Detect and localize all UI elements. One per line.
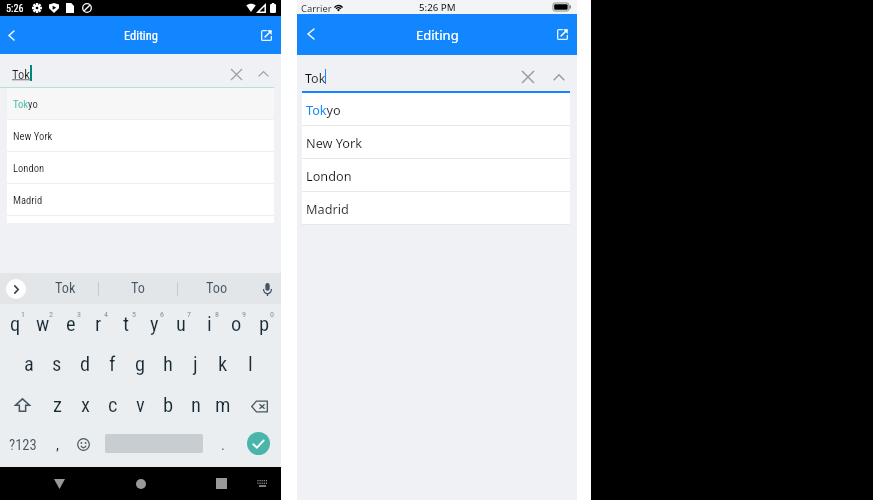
button[interactable]: x bbox=[71, 388, 99, 424]
staticText: London bbox=[13, 162, 45, 174]
staticText: d bbox=[80, 352, 91, 376]
staticText: u bbox=[176, 312, 186, 336]
button[interactable]: g bbox=[126, 347, 154, 383]
staticText: New York bbox=[306, 134, 363, 151]
button[interactable]: London bbox=[302, 159, 570, 192]
staticText: t bbox=[123, 312, 130, 336]
button[interactable]: Madrid bbox=[7, 184, 274, 216]
button[interactable]: Back bbox=[0, 16, 30, 54]
button[interactable]: Clear text bbox=[517, 66, 539, 88]
staticText: London bbox=[306, 167, 352, 184]
staticText: 9 bbox=[242, 310, 246, 319]
button[interactable]: Shift bbox=[8, 391, 36, 419]
button[interactable]: m bbox=[209, 388, 237, 424]
button[interactable]: Too bbox=[178, 273, 256, 304]
button[interactable]: p bbox=[250, 307, 278, 343]
staticText: 6 bbox=[160, 310, 164, 319]
staticText: Tokyo bbox=[13, 98, 38, 110]
staticText: z bbox=[53, 393, 62, 417]
staticText: b bbox=[163, 393, 174, 417]
button[interactable]: Home bbox=[130, 473, 152, 495]
button[interactable]: Voice input bbox=[257, 279, 277, 299]
button[interactable]: r bbox=[84, 307, 112, 343]
button[interactable]: . bbox=[210, 430, 236, 459]
button[interactable]: s bbox=[43, 347, 71, 383]
button[interactable]: New York bbox=[302, 126, 570, 159]
button[interactable]: o bbox=[222, 307, 250, 343]
staticText: . bbox=[221, 436, 225, 454]
staticText: m bbox=[215, 393, 231, 417]
staticText: h bbox=[163, 352, 173, 376]
staticText: 4 bbox=[104, 310, 108, 319]
staticText: Tok bbox=[55, 280, 76, 297]
button[interactable]: ?123 bbox=[1, 430, 44, 459]
button[interactable]: Backspace bbox=[245, 392, 273, 420]
button[interactable]: New York bbox=[7, 120, 274, 152]
staticText: f bbox=[109, 352, 116, 376]
button[interactable]: Recent apps bbox=[211, 473, 232, 494]
staticText: 5:26 bbox=[6, 3, 24, 15]
button[interactable]: More suggestions bbox=[6, 279, 26, 299]
button[interactable]: c bbox=[99, 388, 127, 424]
button[interactable]: i bbox=[195, 307, 223, 343]
button[interactable]: k bbox=[209, 347, 237, 383]
staticText: q bbox=[10, 312, 21, 336]
button[interactable]: Emoji bbox=[70, 430, 96, 459]
button[interactable]: y bbox=[140, 307, 168, 343]
staticText: i bbox=[207, 312, 212, 336]
staticText: Madrid bbox=[306, 200, 349, 217]
staticText: e bbox=[66, 312, 76, 336]
staticText: v bbox=[136, 393, 145, 417]
button[interactable]: , bbox=[44, 430, 70, 459]
button[interactable]: Tokyo bbox=[7, 88, 274, 120]
button[interactable]: Open in new window bbox=[252, 16, 281, 54]
button[interactable]: z bbox=[43, 388, 71, 424]
button[interactable]: b bbox=[154, 388, 182, 424]
button[interactable]: a bbox=[15, 347, 43, 383]
button[interactable]: d bbox=[71, 347, 99, 383]
button[interactable]: Collapse bbox=[548, 66, 570, 88]
button[interactable]: q bbox=[1, 307, 29, 343]
staticText: y bbox=[150, 312, 159, 336]
button[interactable]: Back bbox=[48, 473, 70, 495]
button[interactable]: t bbox=[112, 307, 140, 343]
staticText: s bbox=[52, 352, 62, 376]
staticText: l bbox=[248, 352, 253, 376]
staticText: Too bbox=[206, 280, 228, 297]
staticText: a bbox=[24, 352, 34, 376]
button[interactable]: h bbox=[154, 347, 182, 383]
staticText: Tok bbox=[12, 67, 30, 82]
button[interactable]: To bbox=[99, 273, 177, 304]
staticText: n bbox=[191, 393, 201, 417]
button[interactable]: Back bbox=[297, 14, 327, 54]
button[interactable]: Open in new window bbox=[547, 14, 578, 55]
staticText: Tokyo bbox=[306, 101, 341, 118]
staticText: g bbox=[135, 352, 146, 376]
button[interactable]: Madrid bbox=[302, 192, 570, 225]
staticText: 2 bbox=[49, 310, 53, 319]
staticText: 1 bbox=[21, 310, 25, 319]
button[interactable]: Clear text bbox=[225, 63, 247, 85]
staticText: r bbox=[95, 312, 102, 336]
button[interactable]: London bbox=[7, 152, 274, 184]
button[interactable]: Tok bbox=[32, 273, 98, 304]
staticText: Editing bbox=[416, 26, 459, 44]
staticText: Tok bbox=[305, 70, 326, 87]
staticText: x bbox=[81, 393, 90, 417]
button[interactable]: u bbox=[167, 307, 195, 343]
button[interactable]: Switch keyboard bbox=[252, 473, 273, 494]
staticText: 7 bbox=[187, 310, 191, 319]
button[interactable]: n bbox=[182, 388, 210, 424]
button[interactable]: f bbox=[98, 347, 126, 383]
button[interactable]: Done bbox=[247, 432, 270, 455]
button[interactable]: Tokyo bbox=[302, 93, 570, 126]
button[interactable]: w bbox=[29, 307, 57, 343]
button[interactable]: Collapse bbox=[252, 63, 274, 85]
staticText: 3 bbox=[77, 310, 81, 319]
staticText: k bbox=[218, 352, 228, 376]
button[interactable]: v bbox=[126, 388, 154, 424]
button[interactable]: j bbox=[181, 347, 209, 383]
button[interactable]: e bbox=[57, 307, 85, 343]
button[interactable]: l bbox=[236, 347, 264, 383]
